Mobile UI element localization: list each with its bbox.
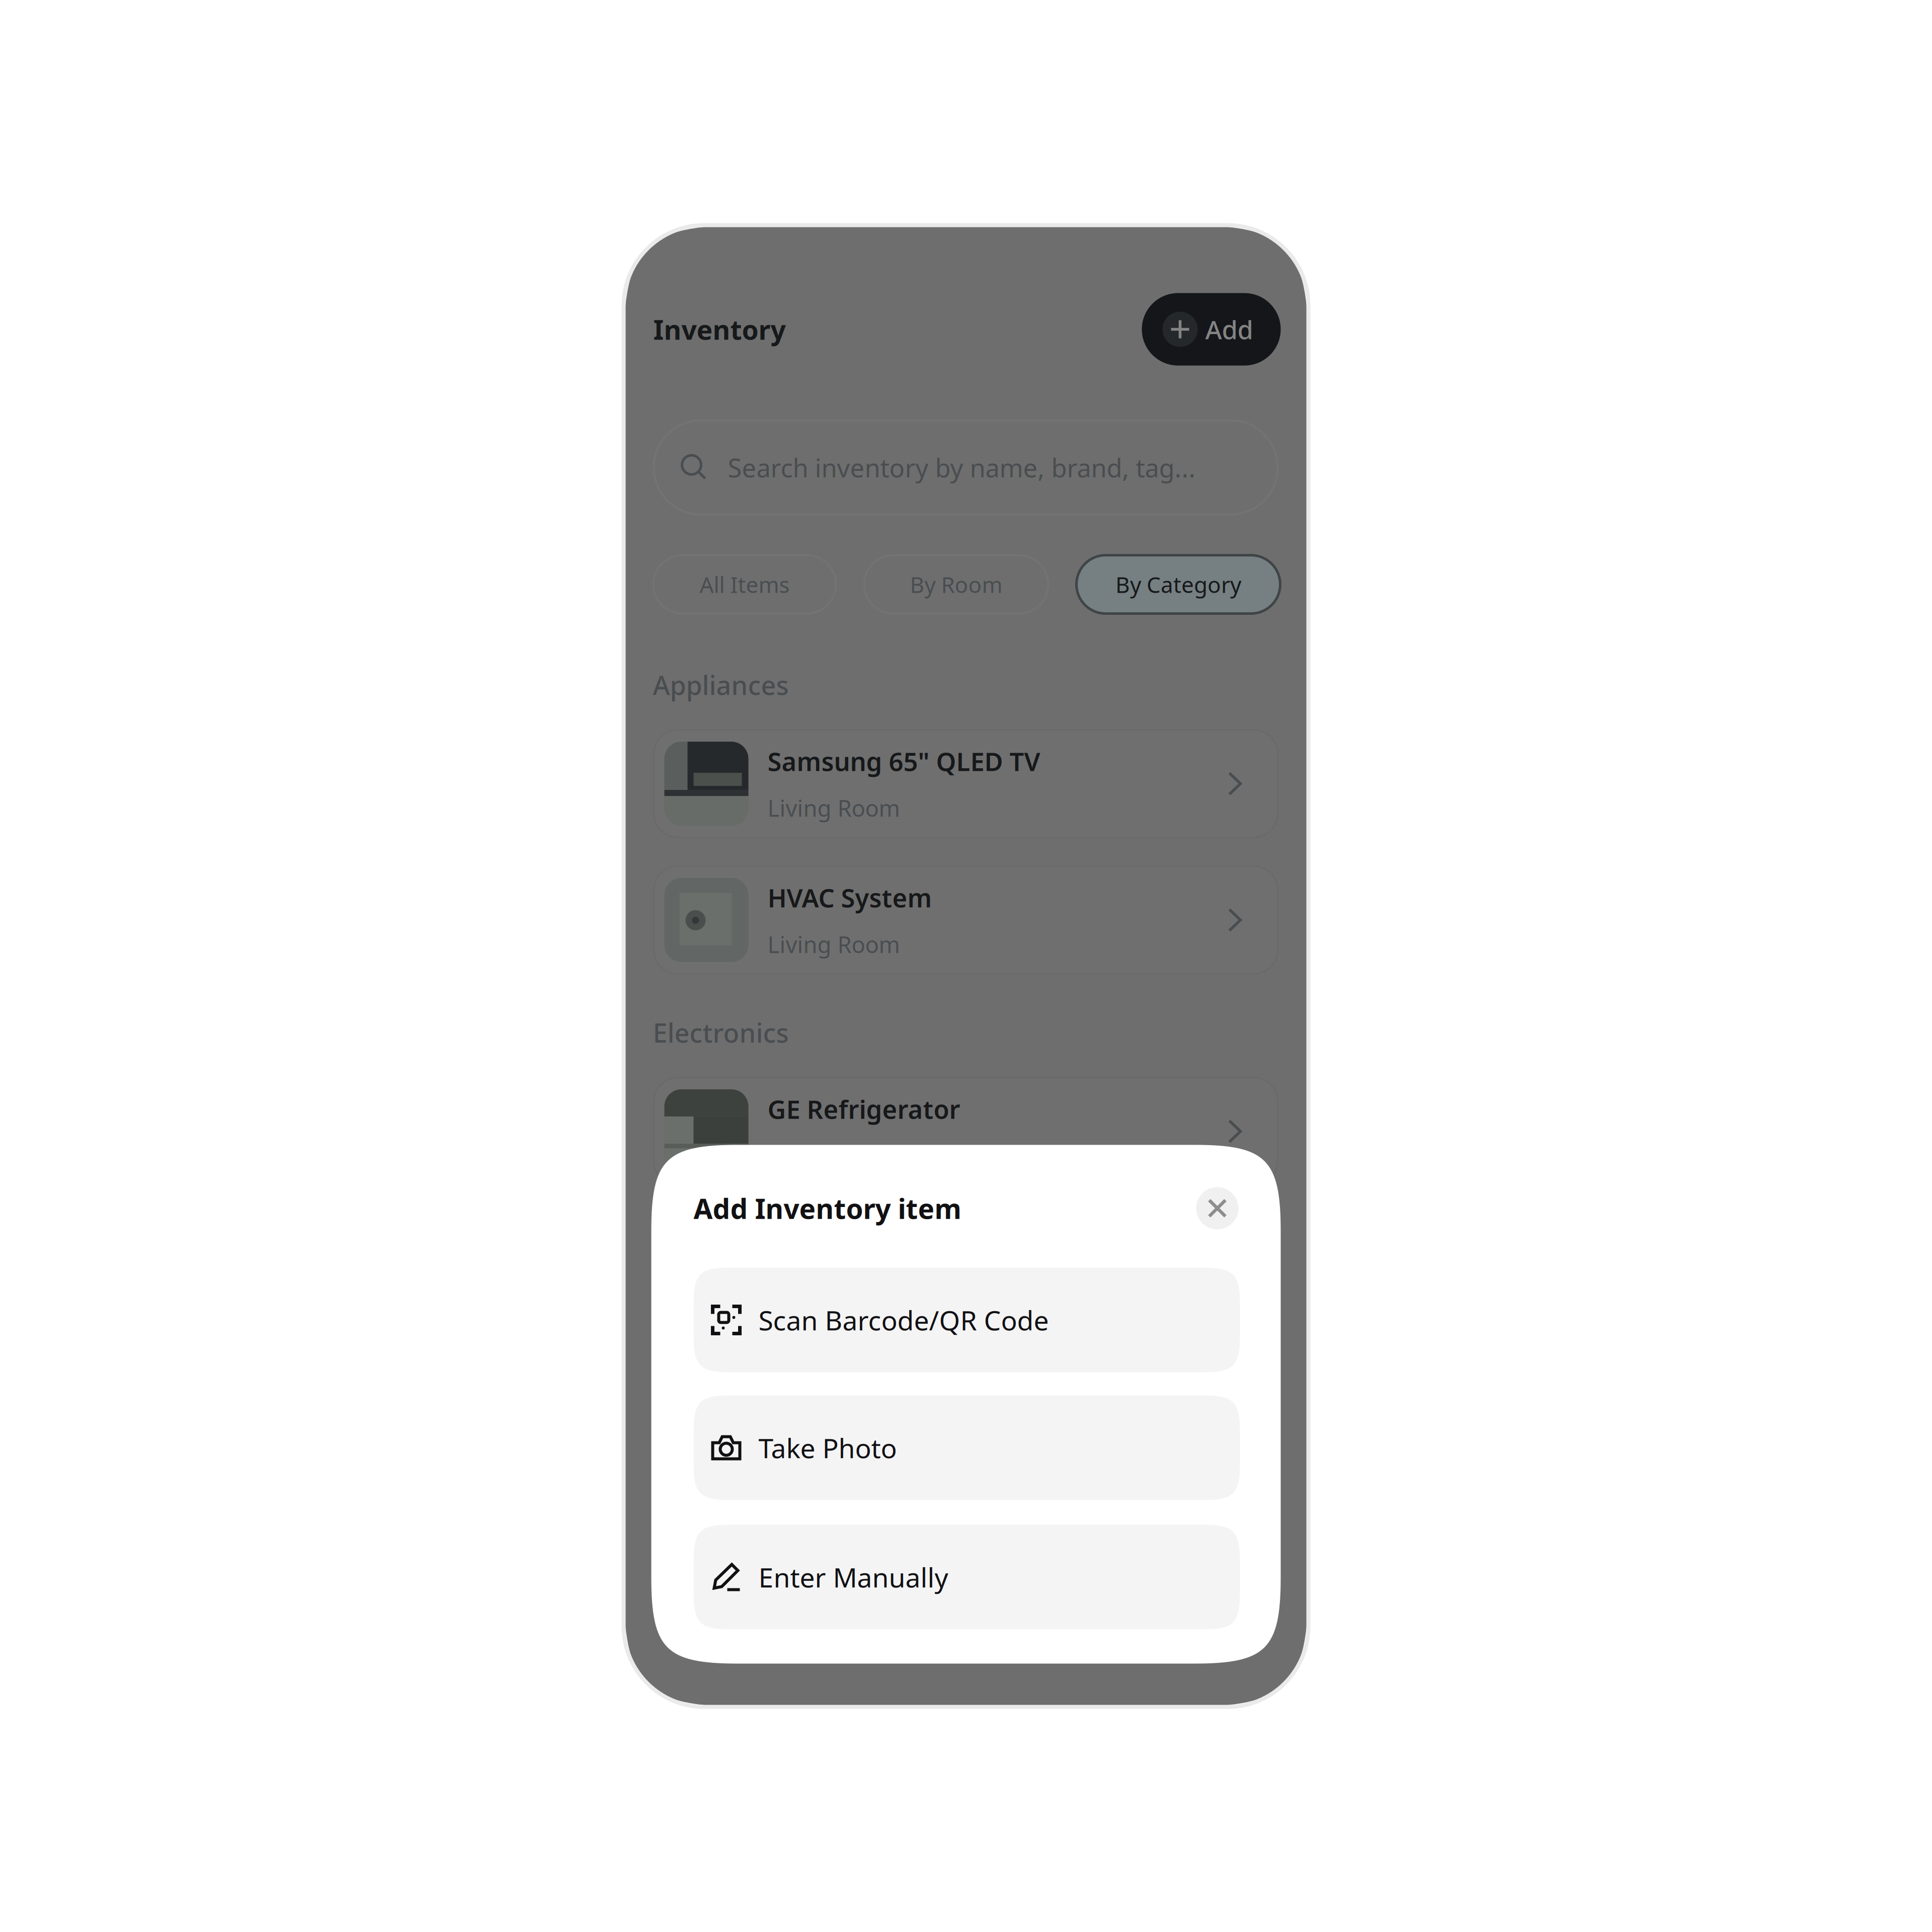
staticText: Samsung 65" QLED TV <box>768 744 1040 778</box>
button[interactable]: By Category <box>1076 555 1280 614</box>
button[interactable]: Add <box>1142 293 1281 366</box>
button[interactable]: Enter Manually <box>694 1525 1240 1629</box>
button[interactable]: Take Photo <box>694 1395 1240 1500</box>
staticText: Kitchen <box>768 1140 848 1171</box>
staticText: Enter Manually <box>758 1559 948 1595</box>
button[interactable]: All Items <box>653 555 836 614</box>
button[interactable]: Scan Barcode/QR Code <box>694 1268 1240 1372</box>
staticText: Electronics <box>653 1015 789 1050</box>
staticText: HVAC System <box>768 881 932 914</box>
staticText: Take Photo <box>758 1430 897 1466</box>
staticText: Inventory <box>653 311 786 347</box>
staticText: Appliances <box>653 667 789 702</box>
staticText: All Items <box>700 570 790 599</box>
staticText: Living Room <box>768 929 900 959</box>
staticText: Add Inventory item <box>694 1190 961 1227</box>
staticText: Living Room <box>768 793 900 823</box>
staticText: By Category <box>1115 570 1241 599</box>
button[interactable]: Samsung 65" QLED TV <box>654 730 1278 838</box>
button[interactable]: By Room <box>864 555 1048 614</box>
staticText: Scan Barcode/QR Code <box>758 1302 1049 1338</box>
staticText: By Room <box>910 570 1002 599</box>
button[interactable]: GE Refrigerator <box>654 1077 1278 1185</box>
staticText: Search inventory by name, brand, tag... <box>728 450 1196 484</box>
button[interactable]: Close <box>1196 1187 1238 1229</box>
staticText: GE Refrigerator <box>768 1092 960 1126</box>
staticText: Add <box>1205 312 1253 346</box>
button[interactable]: HVAC System <box>654 866 1278 974</box>
